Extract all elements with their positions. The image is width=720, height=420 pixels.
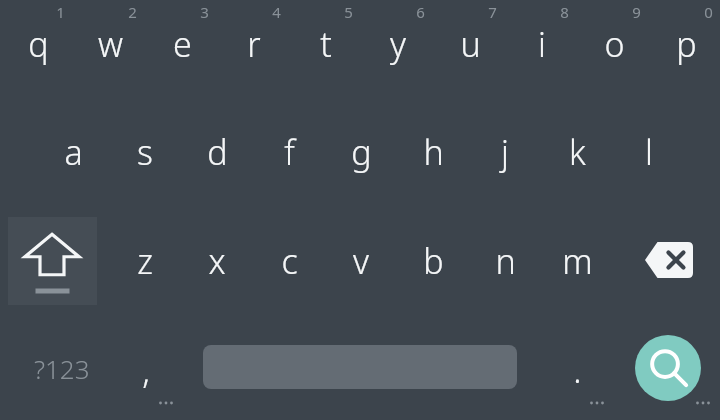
button[interactable] xyxy=(541,215,613,310)
button[interactable] xyxy=(468,105,540,205)
button[interactable]: Search xyxy=(635,335,701,401)
staticText: g xyxy=(351,129,372,175)
button[interactable] xyxy=(576,0,648,100)
button[interactable] xyxy=(469,215,541,310)
button[interactable] xyxy=(252,105,324,205)
button[interactable] xyxy=(540,105,612,205)
staticText: 4 xyxy=(272,2,281,22)
staticText: y xyxy=(390,21,406,67)
button[interactable] xyxy=(360,0,432,100)
staticText: j xyxy=(501,129,509,175)
staticText: 6 xyxy=(416,2,425,22)
staticText: 7 xyxy=(488,2,497,22)
button[interactable] xyxy=(36,105,108,205)
staticText: u xyxy=(460,21,481,67)
staticText: ?123 xyxy=(34,351,90,386)
staticText: h xyxy=(423,129,444,175)
button[interactable]: Shift xyxy=(8,217,97,305)
staticText: r xyxy=(247,21,261,67)
staticText: a xyxy=(64,129,83,175)
staticText: l xyxy=(645,129,653,175)
button[interactable] xyxy=(612,105,684,205)
button[interactable]: Backspace xyxy=(625,217,713,305)
staticText: p xyxy=(676,21,697,67)
staticText: w xyxy=(98,21,123,67)
staticText: v xyxy=(353,238,369,284)
staticText: 8 xyxy=(560,2,569,22)
staticText: 2 xyxy=(128,2,137,22)
button[interactable] xyxy=(72,0,144,100)
staticText: n xyxy=(495,238,516,284)
button[interactable] xyxy=(648,0,720,100)
button[interactable] xyxy=(540,320,614,416)
staticText: m xyxy=(562,238,593,284)
staticText: q xyxy=(28,21,49,67)
button[interactable] xyxy=(116,320,196,416)
staticText: e xyxy=(173,21,192,67)
button[interactable] xyxy=(180,105,252,205)
button[interactable] xyxy=(396,105,468,205)
button[interactable] xyxy=(432,0,504,100)
staticText: . xyxy=(573,347,582,393)
staticText: f xyxy=(284,129,295,175)
button[interactable]: ?123 xyxy=(8,320,116,416)
staticText: t xyxy=(320,21,332,67)
staticText: d xyxy=(207,129,228,175)
staticText: k xyxy=(569,129,586,175)
button[interactable] xyxy=(0,0,72,100)
staticText: 0 xyxy=(704,2,713,22)
staticText: i xyxy=(538,21,546,67)
button[interactable] xyxy=(181,215,253,310)
staticText: s xyxy=(137,129,153,175)
staticText: 1 xyxy=(56,2,65,22)
staticText: b xyxy=(423,238,444,284)
button[interactable] xyxy=(253,215,325,310)
button[interactable] xyxy=(324,105,396,205)
staticText: , xyxy=(142,347,150,393)
staticText: 5 xyxy=(344,2,353,22)
staticText: x xyxy=(208,238,226,284)
staticText: 3 xyxy=(200,2,209,22)
staticText: 9 xyxy=(632,2,641,22)
staticText: o xyxy=(604,21,625,67)
button[interactable] xyxy=(144,0,216,100)
button[interactable] xyxy=(216,0,288,100)
button[interactable] xyxy=(504,0,576,100)
button[interactable] xyxy=(109,215,181,310)
button[interactable] xyxy=(288,0,360,100)
staticText: c xyxy=(281,238,298,284)
button[interactable] xyxy=(108,105,180,205)
staticText: z xyxy=(137,238,153,284)
button[interactable] xyxy=(325,215,397,310)
button[interactable] xyxy=(397,215,469,310)
